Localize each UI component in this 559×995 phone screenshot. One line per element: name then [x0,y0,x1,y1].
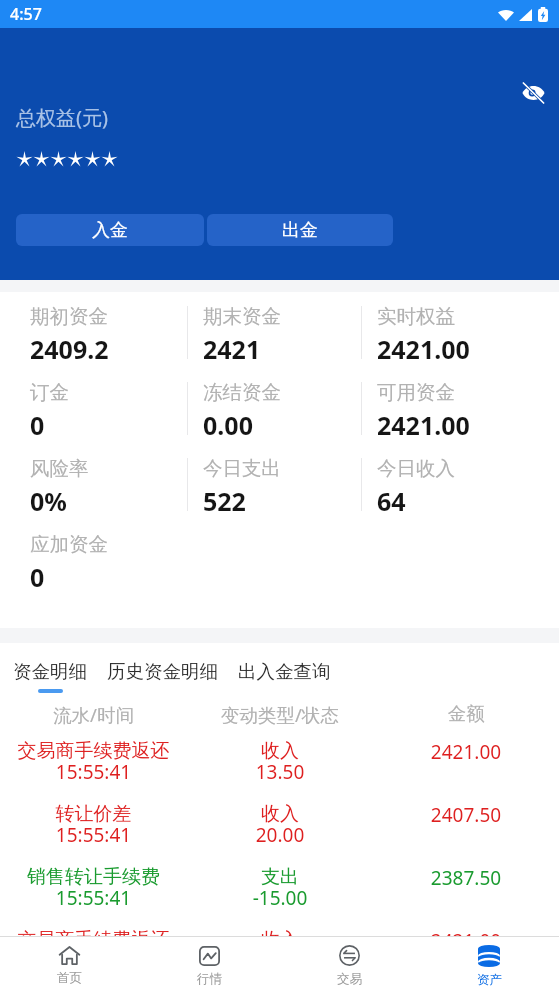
staticText: 交易商手续费返还 15:55:41 [0,928,187,936]
staticText: 0 [30,408,45,442]
staticText: 2407.50 [373,802,559,828]
staticText: 2421.00 [373,739,559,765]
staticText: 0% [30,484,67,518]
button[interactable]: 交易 [279,937,419,995]
staticText: 2421.00 [377,332,470,366]
staticText: 出入金查询 [238,660,331,683]
staticText: 可用资金 [377,380,455,405]
staticText: 销售转让手续费 15:55:41 [0,865,187,911]
staticText: 2409.2 [30,332,109,366]
staticText: 历史资金明细 [107,660,218,683]
staticText: 总权益(元) [16,104,108,131]
staticText: 交易 [337,971,362,987]
button[interactable]: 转让价差 15:55:41 [0,790,559,853]
button[interactable]: 出入金查询 [228,660,341,693]
staticText: 实时权益 [377,304,455,329]
staticText: 期初资金 [30,304,108,329]
staticText: 变动类型/状态 [187,702,373,727]
staticText: 0 [30,560,45,594]
staticText: 4:57 [10,3,42,25]
staticText: 风险率 [30,456,89,481]
staticText: 转让价差 15:55:41 [0,802,187,848]
staticText: 期末资金 [203,304,281,329]
staticText: 订金 [30,380,69,405]
button[interactable]: 交易商手续费返还 15:55:41 [0,916,559,936]
staticText: 出金 [282,219,318,242]
staticText: 资产 [477,972,502,988]
button[interactable]: 资金明细 [3,660,97,693]
staticText: 应加资金 [30,532,108,557]
staticText: 收入 13.50 [187,739,373,785]
staticText: 收入 20.00 [187,802,373,848]
staticText: 首页 [57,970,82,986]
staticText: 交易商手续费返还 15:55:41 [0,739,187,785]
button[interactable]: 销售转让手续费 15:55:41 [0,853,559,916]
staticText: 资金明细 [13,660,87,683]
staticText: 2421.00 [377,408,470,442]
button[interactable]: 行情 [139,937,279,995]
staticText: 522 [203,484,246,518]
button[interactable]: 入金 [16,214,204,246]
button[interactable]: 交易商手续费返还 15:55:41 [0,727,559,790]
staticText: 行情 [197,971,222,987]
staticText: 2421 [203,332,261,366]
staticText: 支出 -15.00 [187,865,373,911]
staticText: 2387.50 [373,865,559,891]
button[interactable]: 资产 [419,937,559,995]
staticText: 今日收入 [377,456,455,481]
staticText: 收入 13.50 [187,928,373,936]
staticText: 64 [377,484,406,518]
staticText: 金额 [373,702,559,725]
button[interactable]: 出金 [207,214,393,246]
staticText: 2421.00 [373,928,559,936]
staticText: 0.00 [203,408,253,442]
button[interactable]: Hide balance [511,71,555,115]
staticText: 流水/时间 [0,702,187,727]
staticText: 今日支出 [203,456,281,481]
button[interactable]: 首页 [0,937,139,995]
staticText: 冻结资金 [203,380,281,405]
button[interactable]: 历史资金明细 [97,660,228,693]
staticText: 入金 [92,219,128,242]
